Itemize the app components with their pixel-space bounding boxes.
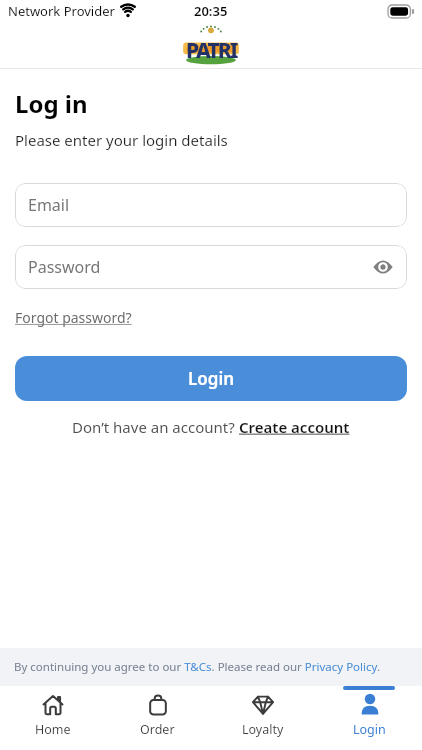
button[interactable]: Loyalty xyxy=(210,686,316,750)
staticText: PATRI xyxy=(186,36,237,65)
staticText: By continuing you agree to our T&Cs. Ple… xyxy=(14,659,422,675)
staticText: Network Provider xyxy=(8,2,115,20)
staticText: Login xyxy=(188,367,235,390)
button[interactable]: Login xyxy=(316,686,422,750)
button[interactable]: Create account xyxy=(239,417,350,437)
staticText: 20:35 xyxy=(194,2,228,20)
staticText: Login xyxy=(353,721,386,738)
staticText: Order xyxy=(140,721,175,738)
staticText: Email xyxy=(28,194,70,216)
staticText: Please enter your login details xyxy=(15,130,228,150)
staticText: Don’t have an account? xyxy=(72,417,239,437)
staticText: Log in xyxy=(15,87,88,120)
button[interactable]: Email xyxy=(15,183,407,227)
button[interactable]: Home xyxy=(0,686,105,750)
button[interactable]: Password xyxy=(15,245,407,289)
button[interactable]: Forgot password? xyxy=(15,308,132,327)
staticText: Password xyxy=(28,256,101,278)
staticText: Home xyxy=(35,721,71,738)
staticText: Loyalty xyxy=(242,721,284,738)
button[interactable]: Order xyxy=(105,686,210,750)
button[interactable]: Login xyxy=(15,356,407,401)
